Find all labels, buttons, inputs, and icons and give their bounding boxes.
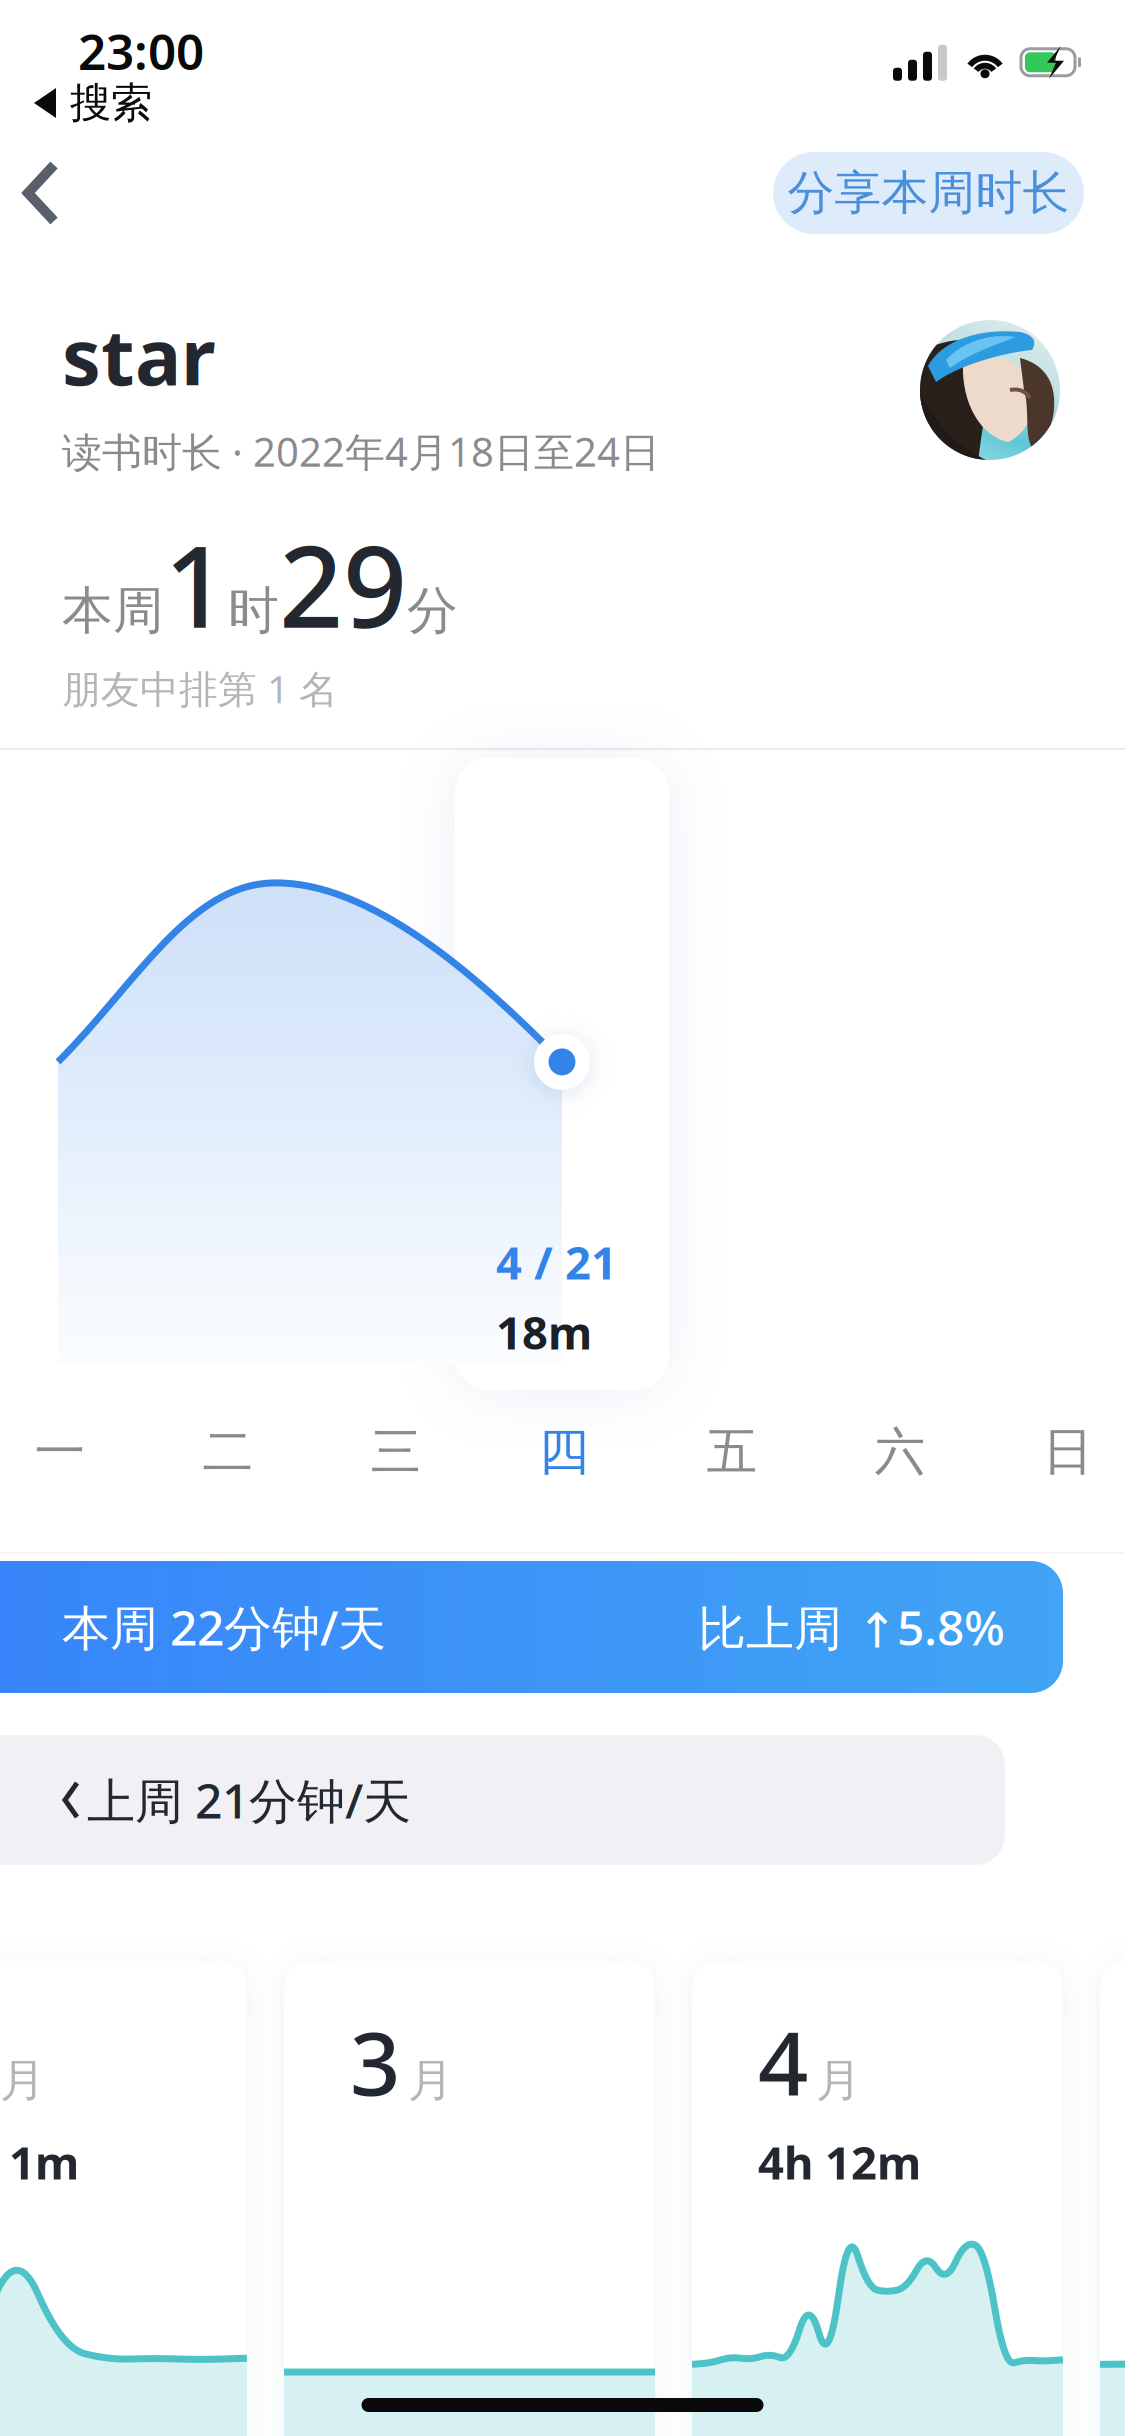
staticText: 月 [816, 2053, 861, 2108]
staticText: 分享本周时长 [787, 164, 1069, 222]
button[interactable]: 一 [0, 1402, 144, 1502]
staticText: 朋友中排第 1 名 [62, 662, 338, 714]
staticText: 分 [407, 580, 458, 642]
staticText: 4 / 21 [496, 1232, 617, 1292]
staticText: 上周 21分钟/天 [87, 1768, 411, 1832]
staticText: 六 [874, 1421, 925, 1483]
staticText: 读书时长 · 2022年4月18日至24日 [62, 425, 660, 478]
staticText: 4h 12m [758, 2132, 921, 2192]
button[interactable]: 3 [284, 1961, 655, 2436]
button[interactable]: 日 [984, 1402, 1125, 1502]
staticText: 日 [1042, 1421, 1093, 1483]
staticText: 23:00 [78, 18, 204, 83]
staticText: 二 [202, 1421, 253, 1483]
button[interactable]: 2 [0, 1961, 247, 2436]
staticText: 18m [496, 1302, 592, 1362]
button[interactable]: 4 [692, 1961, 1063, 2436]
button[interactable]: 二 [144, 1402, 312, 1502]
staticText: 三 [370, 1421, 421, 1483]
staticText: 一 [34, 1421, 85, 1483]
staticText: 四 [538, 1421, 589, 1483]
staticText: 五 [706, 1421, 757, 1483]
button[interactable]: 四 [480, 1402, 648, 1502]
button[interactable]: 5 [1100, 1961, 1125, 2436]
staticText: 搜索 [70, 78, 152, 128]
staticText: 3 [350, 2003, 400, 2120]
staticText: 3h 1m [0, 2132, 79, 2192]
staticText: 29 [279, 510, 407, 658]
button[interactable]: Back to Search [0, 76, 1125, 130]
staticText: 时 [228, 580, 279, 642]
staticText: 月 [408, 2053, 453, 2108]
button[interactable]: 三 [312, 1402, 480, 1502]
staticText: 本周 22分钟/天 [62, 1595, 386, 1659]
staticText: 月 [0, 2053, 45, 2108]
button[interactable]: 本周 22分钟/天 [0, 1561, 1063, 1693]
button[interactable]: 六 [816, 1402, 984, 1502]
button[interactable]: 分享本周时长 [773, 152, 1084, 234]
button[interactable]: 五 [648, 1402, 816, 1502]
staticText: 4 [758, 2003, 808, 2120]
staticText: 比上周 ↑5.8% [698, 1595, 1005, 1659]
staticText: star [62, 304, 216, 407]
staticText: 本周 [62, 580, 164, 642]
button[interactable]: Back [0, 135, 106, 251]
staticText: 1 [164, 510, 228, 658]
button[interactable]: 上周 21分钟/天 [0, 1735, 1005, 1865]
